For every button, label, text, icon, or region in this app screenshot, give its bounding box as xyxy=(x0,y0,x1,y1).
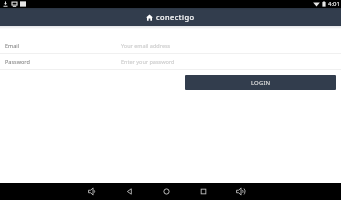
button[interactable]: Password xyxy=(0,54,341,69)
staticText: conectigo xyxy=(156,12,195,22)
staticText: Your email address xyxy=(121,42,171,49)
button[interactable]: LOGIN xyxy=(185,75,336,90)
button[interactable]: Volume up xyxy=(231,183,249,200)
staticText: LOGIN xyxy=(251,79,271,87)
staticText: Email xyxy=(5,42,20,49)
staticText: Enter your password xyxy=(121,58,175,65)
button[interactable]: Recents xyxy=(194,183,212,200)
staticText: Password xyxy=(5,58,30,65)
button[interactable]: Email xyxy=(0,38,341,53)
button[interactable]: Back xyxy=(120,183,138,200)
button[interactable]: Home xyxy=(157,183,175,200)
button[interactable]: Volume down xyxy=(83,183,101,200)
staticText: 4:01 xyxy=(328,0,340,8)
